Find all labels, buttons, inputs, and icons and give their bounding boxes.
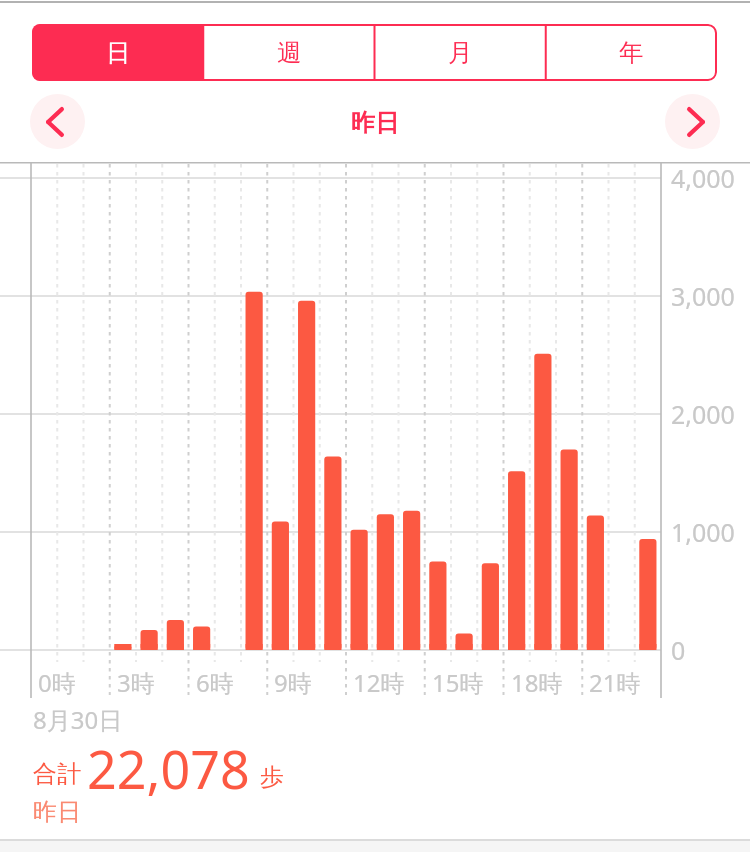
staticText: 年 bbox=[619, 37, 644, 68]
staticText: 9時 bbox=[274, 666, 312, 699]
staticText: 日 bbox=[106, 37, 131, 68]
staticText: 0時 bbox=[38, 666, 76, 699]
staticText: 週 bbox=[277, 37, 302, 68]
button[interactable]: 次の日 bbox=[665, 94, 720, 149]
button[interactable]: 年 bbox=[546, 24, 717, 81]
staticText: 0 bbox=[671, 633, 686, 667]
button[interactable]: 日 bbox=[32, 24, 204, 81]
button[interactable]: 月 bbox=[375, 24, 546, 81]
staticText: 合計 bbox=[33, 759, 81, 789]
staticText: 1,000 bbox=[671, 515, 735, 549]
staticText: 3,000 bbox=[671, 279, 735, 313]
staticText: 歩 bbox=[260, 762, 284, 792]
button[interactable]: 前の日 bbox=[30, 94, 85, 149]
staticText: 2,000 bbox=[671, 397, 735, 431]
staticText: 21時 bbox=[589, 666, 641, 699]
staticText: 22,078 bbox=[87, 733, 250, 804]
staticText: 8月30日 bbox=[33, 703, 123, 736]
staticText: 12時 bbox=[353, 666, 405, 699]
staticText: 昨日 bbox=[351, 108, 399, 138]
staticText: 3時 bbox=[117, 666, 155, 699]
staticText: 4,000 bbox=[671, 161, 735, 195]
staticText: 15時 bbox=[432, 666, 484, 699]
staticText: 月 bbox=[448, 37, 473, 68]
button[interactable]: 週 bbox=[204, 24, 375, 81]
staticText: 18時 bbox=[511, 666, 563, 699]
button[interactable] bbox=[26, 740, 306, 830]
staticText: 6時 bbox=[196, 666, 234, 699]
staticText: 昨日 bbox=[33, 797, 81, 827]
